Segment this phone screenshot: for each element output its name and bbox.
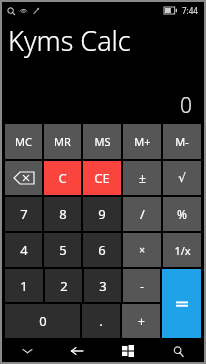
button[interactable]: M-: [163, 124, 201, 159]
button[interactable]: +: [122, 304, 160, 338]
button[interactable]: 1: [5, 269, 43, 302]
button[interactable]: .: [82, 304, 120, 338]
staticText: M-: [175, 134, 189, 149]
button[interactable]: MR: [44, 124, 81, 159]
button[interactable]: M+: [123, 124, 161, 159]
staticText: 7:44: [182, 5, 198, 16]
staticText: 1/x: [174, 243, 191, 258]
button[interactable]: Search: [153, 340, 204, 362]
button[interactable]: 0: [5, 304, 80, 338]
staticText: 0: [39, 312, 47, 330]
staticText: %: [177, 206, 187, 222]
button[interactable]: 1/x: [163, 233, 201, 267]
staticText: .: [99, 312, 103, 330]
staticText: 1: [20, 277, 28, 295]
button[interactable]: MS: [83, 124, 121, 159]
button[interactable]: Equals: [162, 269, 201, 338]
staticText: 5: [59, 241, 67, 259]
staticText: 7: [20, 205, 28, 223]
staticText: 0: [180, 91, 192, 120]
button[interactable]: MC: [5, 124, 42, 159]
staticText: ×: [139, 243, 145, 257]
button[interactable]: -: [123, 269, 160, 302]
button[interactable]: 3: [84, 269, 121, 302]
button[interactable]: /: [123, 197, 161, 231]
staticText: Kyms Calc: [8, 22, 131, 59]
staticText: M+: [134, 134, 151, 149]
button[interactable]: Back: [52, 340, 102, 362]
button[interactable]: 6: [83, 233, 121, 267]
staticText: MS: [94, 134, 111, 149]
button[interactable]: 4: [5, 233, 42, 267]
button[interactable]: √: [163, 161, 201, 195]
staticText: -: [140, 278, 144, 294]
button[interactable]: %: [163, 197, 201, 231]
staticText: MR: [54, 134, 71, 149]
button[interactable]: Hide: [2, 340, 52, 362]
staticText: 9: [98, 205, 106, 223]
button[interactable]: ±: [123, 161, 161, 195]
staticText: ±: [139, 170, 146, 186]
button[interactable]: ×: [123, 233, 161, 267]
staticText: 2: [60, 277, 68, 295]
button[interactable]: Start: [102, 340, 153, 362]
staticText: 8: [59, 205, 67, 223]
button[interactable]: 7: [5, 197, 42, 231]
button[interactable]: 9: [83, 197, 121, 231]
staticText: 3: [99, 277, 107, 295]
button[interactable]: 2: [45, 269, 82, 302]
button[interactable]: 8: [44, 197, 81, 231]
staticText: CE: [94, 169, 110, 187]
button[interactable]: 5: [44, 233, 81, 267]
staticText: +: [138, 313, 145, 329]
button[interactable]: CE: [83, 161, 121, 195]
staticText: MC: [15, 134, 32, 149]
button[interactable]: C: [44, 161, 81, 195]
staticText: 4: [20, 241, 28, 259]
staticText: /: [140, 205, 145, 223]
button[interactable]: Backspace: [5, 161, 42, 195]
staticText: √: [178, 171, 186, 185]
staticText: C: [58, 169, 67, 187]
staticText: 6: [98, 241, 106, 259]
